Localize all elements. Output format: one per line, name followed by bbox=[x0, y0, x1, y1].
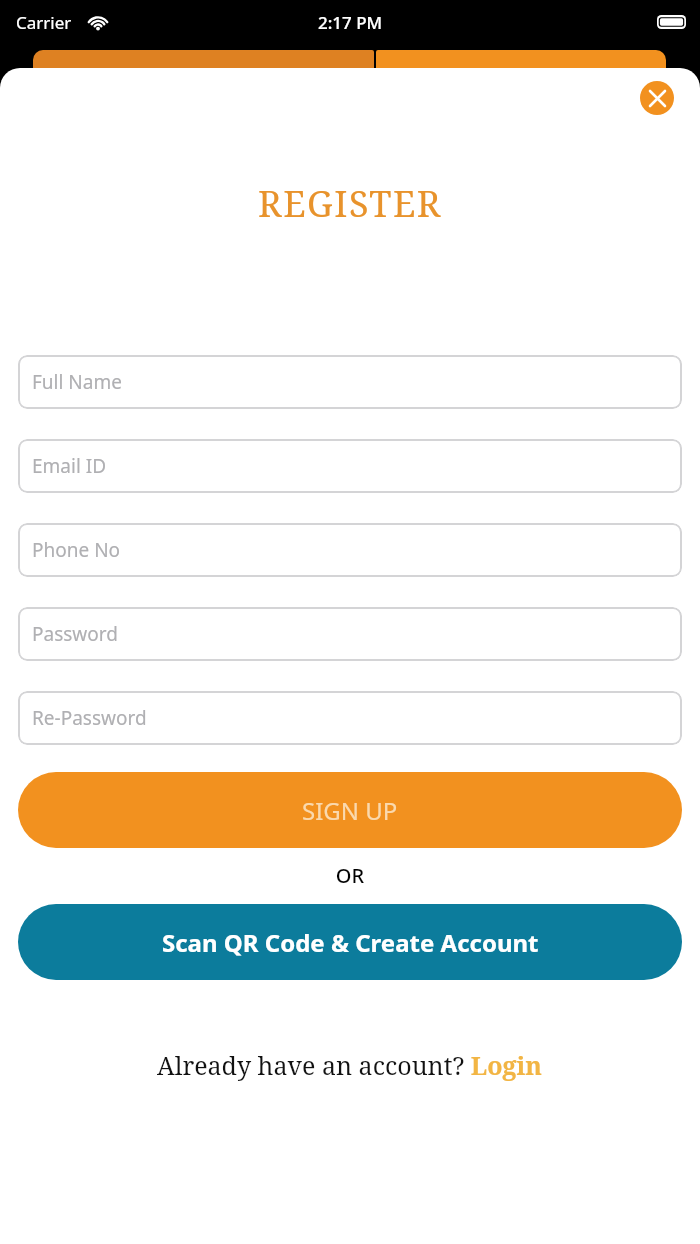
staticText: Already have an account? Login bbox=[157, 1048, 543, 1082]
button[interactable]: Close bbox=[640, 81, 674, 115]
staticText: SIGN UP bbox=[302, 794, 398, 827]
staticText: Carrier bbox=[16, 11, 72, 34]
button[interactable]: Password bbox=[18, 607, 682, 661]
staticText: Email ID bbox=[32, 453, 107, 479]
staticText: Re-Password bbox=[32, 705, 147, 731]
staticText: REGISTER bbox=[0, 179, 700, 228]
staticText: Password bbox=[32, 621, 118, 647]
button[interactable] bbox=[33, 50, 374, 80]
staticText: Scan QR Code & Create Account bbox=[162, 926, 539, 959]
button[interactable]: Already have an account? Login bbox=[157, 1048, 543, 1082]
button[interactable]: Phone No bbox=[18, 523, 682, 577]
staticText: 2:17 PM bbox=[318, 11, 383, 34]
button[interactable]: Re-Password bbox=[18, 691, 682, 745]
button[interactable]: Scan QR Code & Create Account bbox=[18, 904, 682, 980]
button[interactable]: Email ID bbox=[18, 439, 682, 493]
staticText: Phone No bbox=[32, 537, 121, 563]
button[interactable]: Full Name bbox=[18, 355, 682, 409]
button[interactable] bbox=[376, 50, 666, 80]
button[interactable]: SIGN UP bbox=[18, 772, 682, 848]
staticText: Full Name bbox=[32, 369, 122, 395]
staticText: OR bbox=[18, 862, 682, 889]
